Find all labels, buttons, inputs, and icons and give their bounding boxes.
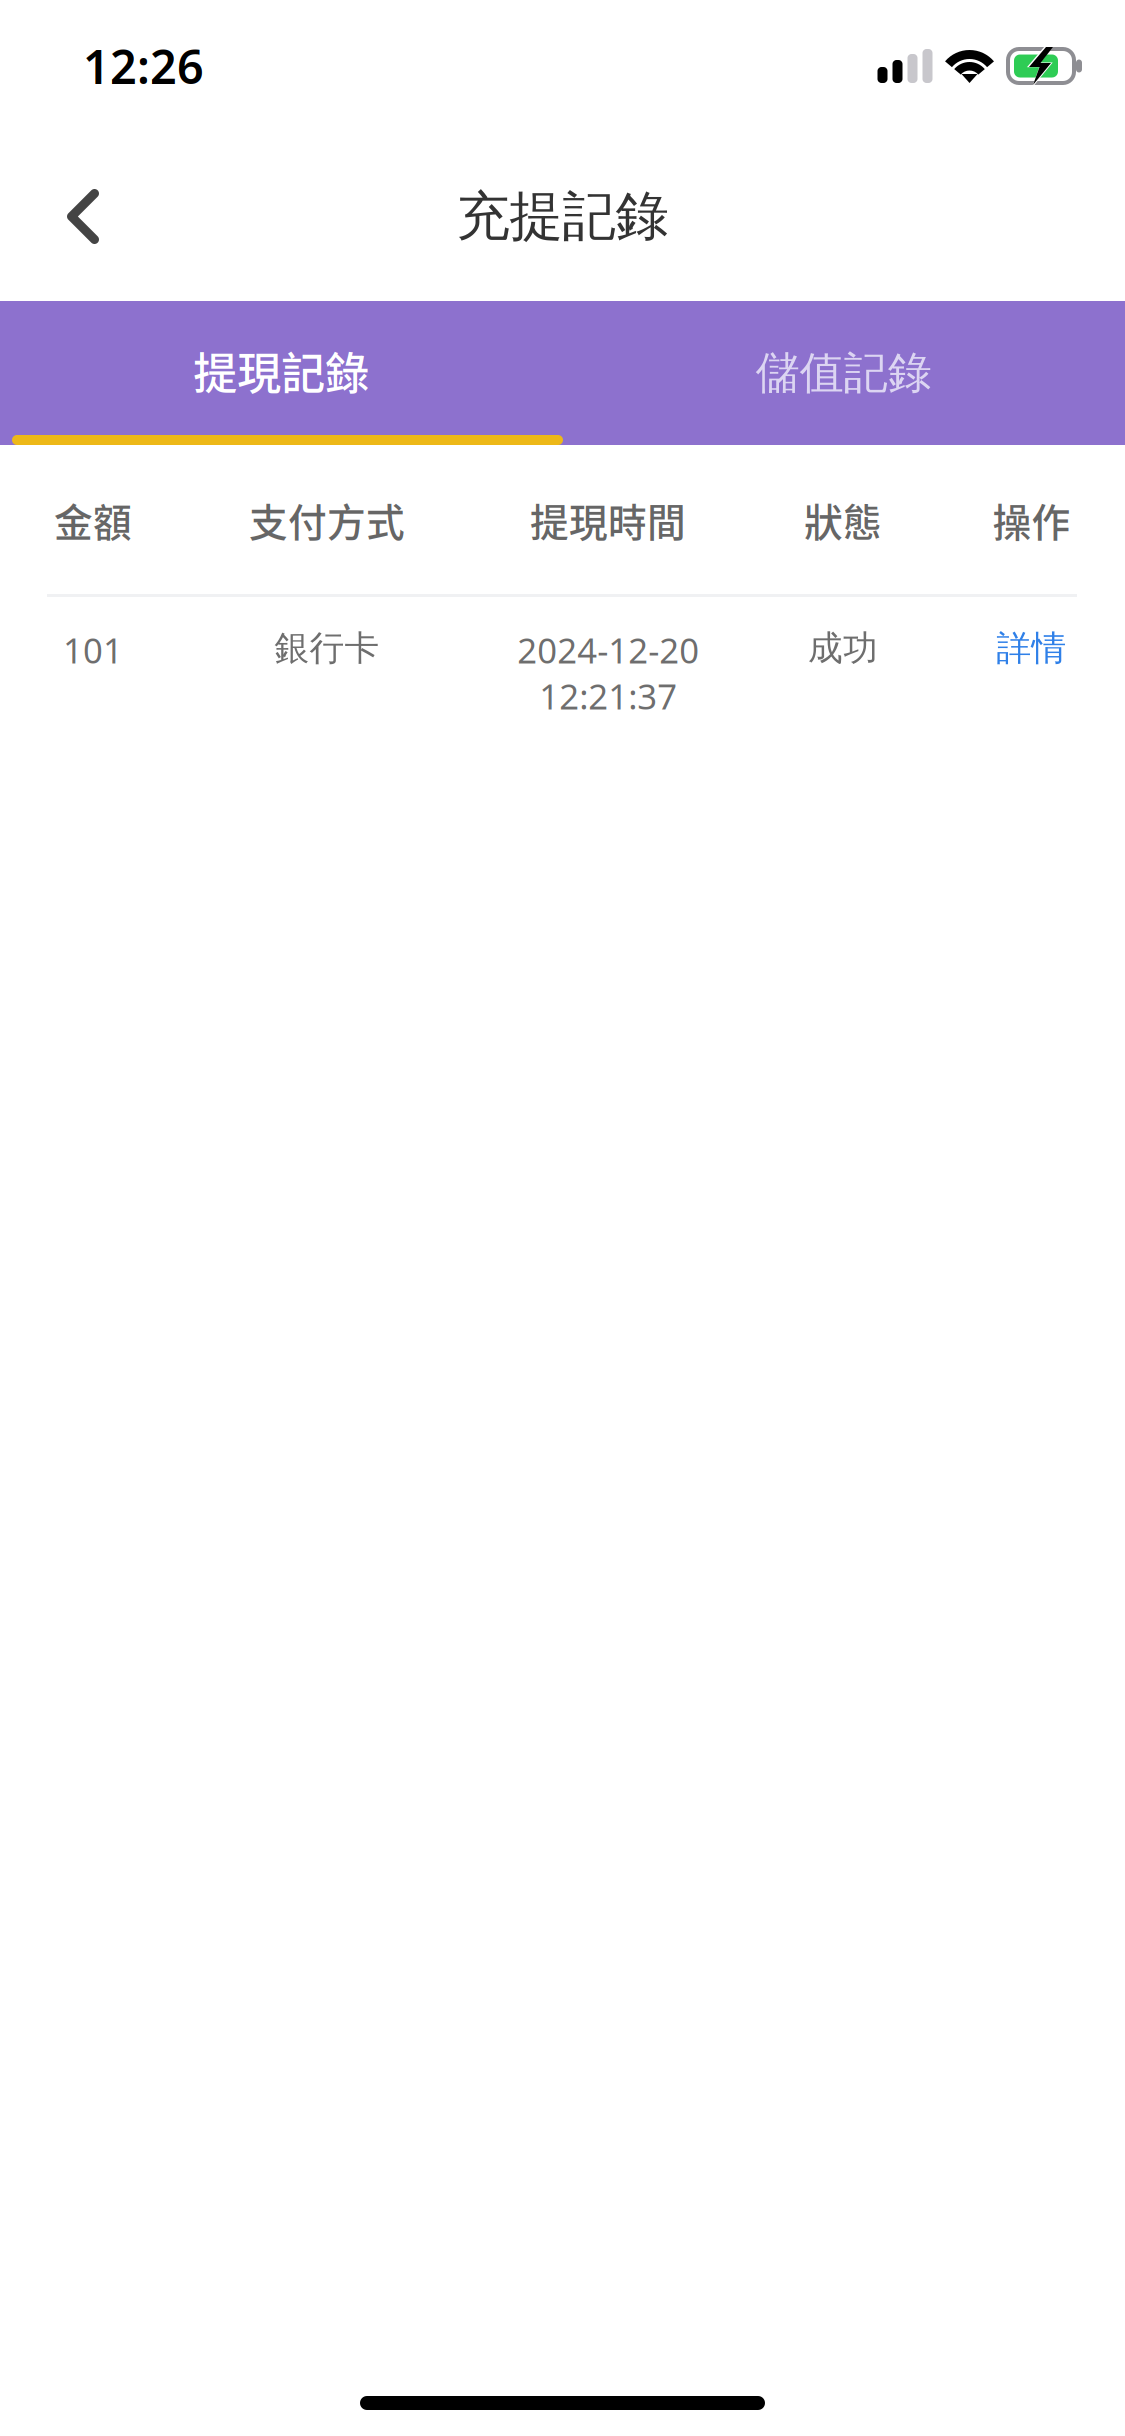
staticText: 支付方式 bbox=[249, 492, 405, 548]
staticText: 12:26 bbox=[83, 35, 204, 97]
staticText: 提現記錄 bbox=[193, 339, 369, 402]
staticText: 儲值記錄 bbox=[756, 346, 932, 400]
staticText: 充提記錄 bbox=[456, 184, 668, 249]
staticText: 金額 bbox=[54, 492, 132, 548]
staticText: 提現時間 bbox=[530, 492, 686, 548]
button[interactable]: Back bbox=[28, 161, 138, 271]
button[interactable]: 儲值記錄 bbox=[562, 301, 1125, 435]
staticText: 詳情 bbox=[996, 627, 1066, 670]
staticText: 101 bbox=[63, 627, 123, 673]
button[interactable]: 詳情 bbox=[938, 627, 1125, 717]
staticText: 狀態 bbox=[804, 492, 882, 548]
staticText: 成功 bbox=[808, 627, 878, 670]
staticText: 2024-12-20 12:21:37 bbox=[517, 627, 699, 719]
staticText: 銀行卡 bbox=[274, 627, 379, 670]
button[interactable]: 提現記錄 bbox=[0, 301, 562, 435]
staticText: 操作 bbox=[992, 492, 1070, 548]
